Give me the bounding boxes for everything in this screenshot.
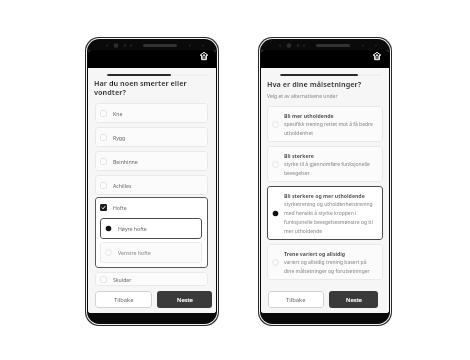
button[interactable]: Rygg (95, 127, 208, 147)
staticText: Venstre hofte (118, 249, 151, 256)
button[interactable]: Kne (95, 103, 208, 123)
button[interactable]: Home (198, 50, 209, 61)
staticText: Rygg (113, 134, 126, 141)
staticText: Neste (177, 296, 193, 304)
staticText: Trene variert og allsidig (284, 250, 346, 257)
staticText: Skulder (113, 276, 132, 283)
staticText: spesifikk trening rettet mot å få bedre … (284, 121, 378, 136)
staticText: Velg et av alternativene under (267, 93, 338, 100)
staticText: styrke til å gjennomføre funksjonelle be… (284, 161, 378, 176)
button[interactable]: Hofte (95, 197, 208, 268)
staticText: Tilbake (286, 296, 306, 304)
button[interactable]: Skulder (95, 272, 208, 286)
button[interactable]: Bli sterkere og mer utholdende (267, 186, 383, 240)
button[interactable]: Høyre hofte (100, 218, 202, 239)
button[interactable]: Home (371, 50, 382, 61)
staticText: Achilles (113, 182, 132, 189)
button[interactable]: Venstre hofte (100, 242, 202, 263)
staticText: Bli sterkere (284, 152, 314, 159)
staticText: Tilbake (114, 296, 134, 304)
button[interactable]: Trene variert og allsidig (267, 244, 383, 280)
button[interactable]: Bli mer utholdende (267, 106, 383, 142)
button[interactable]: Achilles (95, 175, 208, 195)
staticText: Hofte (113, 204, 127, 211)
button[interactable]: Tilbake (268, 291, 324, 308)
staticText: Kne (113, 110, 123, 117)
button[interactable]: Neste (329, 291, 378, 308)
staticText: variert og allsidig trening basert på di… (284, 259, 378, 274)
button[interactable]: Tilbake (95, 291, 152, 308)
button[interactable]: Bli sterkere (267, 146, 383, 182)
staticText: styrketrening og utholdenhetstrening med… (284, 201, 378, 234)
button[interactable]: Neste (157, 291, 212, 308)
staticText: Bli mer utholdende (284, 112, 334, 119)
staticText: Beinhinne (113, 158, 138, 165)
staticText: Høyre hofte (118, 225, 147, 232)
staticText: Hva er dine målsetninger? (267, 79, 362, 89)
staticText: Neste (346, 296, 362, 304)
staticText: Har du noen smerter eller vondter? (94, 78, 200, 97)
staticText: Bli sterkere og mer utholdende (284, 192, 365, 199)
button[interactable]: Beinhinne (95, 151, 208, 171)
